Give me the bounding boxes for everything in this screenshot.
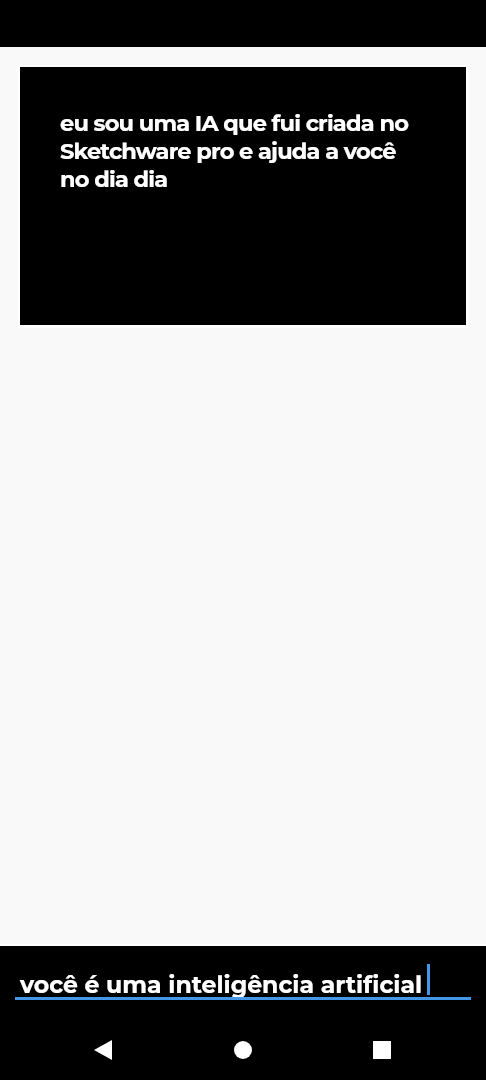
button[interactable]: eu sou uma IA que fui criada no Sketchwa… — [20, 67, 466, 325]
staticText: eu sou uma IA que fui criada no Sketchwa… — [60, 109, 416, 193]
button[interactable]: Home — [219, 1026, 267, 1074]
button[interactable]: Recent apps — [358, 1026, 406, 1074]
staticText: você é uma inteligência artificial — [20, 970, 423, 999]
button[interactable]: Back — [79, 1026, 127, 1074]
button[interactable]: você é uma inteligência artificial — [0, 946, 486, 1006]
